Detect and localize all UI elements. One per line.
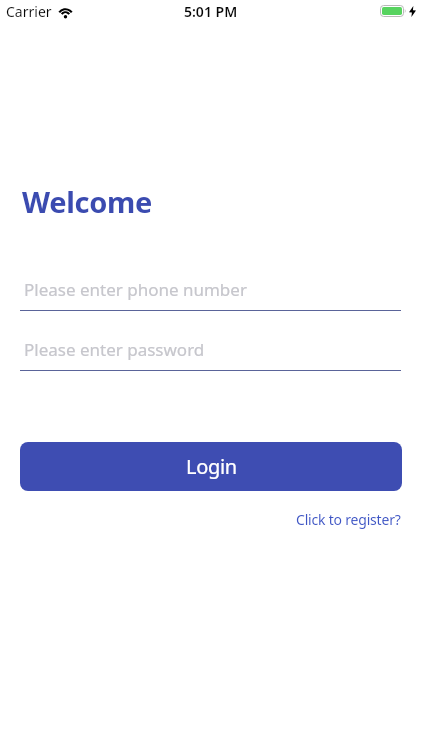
- button[interactable]: Login: [20, 442, 402, 491]
- button[interactable]: Click to register?: [296, 510, 401, 529]
- staticText: Welcome: [22, 182, 152, 221]
- staticText: Please enter password: [24, 338, 205, 361]
- staticText: Login: [186, 453, 237, 480]
- staticText: Please enter phone number: [24, 278, 247, 301]
- button[interactable]: Please enter phone number: [20, 271, 401, 311]
- staticText: Click to register?: [296, 510, 401, 529]
- button[interactable]: Please enter password: [20, 331, 401, 371]
- staticText: Carrier: [6, 2, 52, 21]
- staticText: 5:01 PM: [184, 2, 238, 21]
